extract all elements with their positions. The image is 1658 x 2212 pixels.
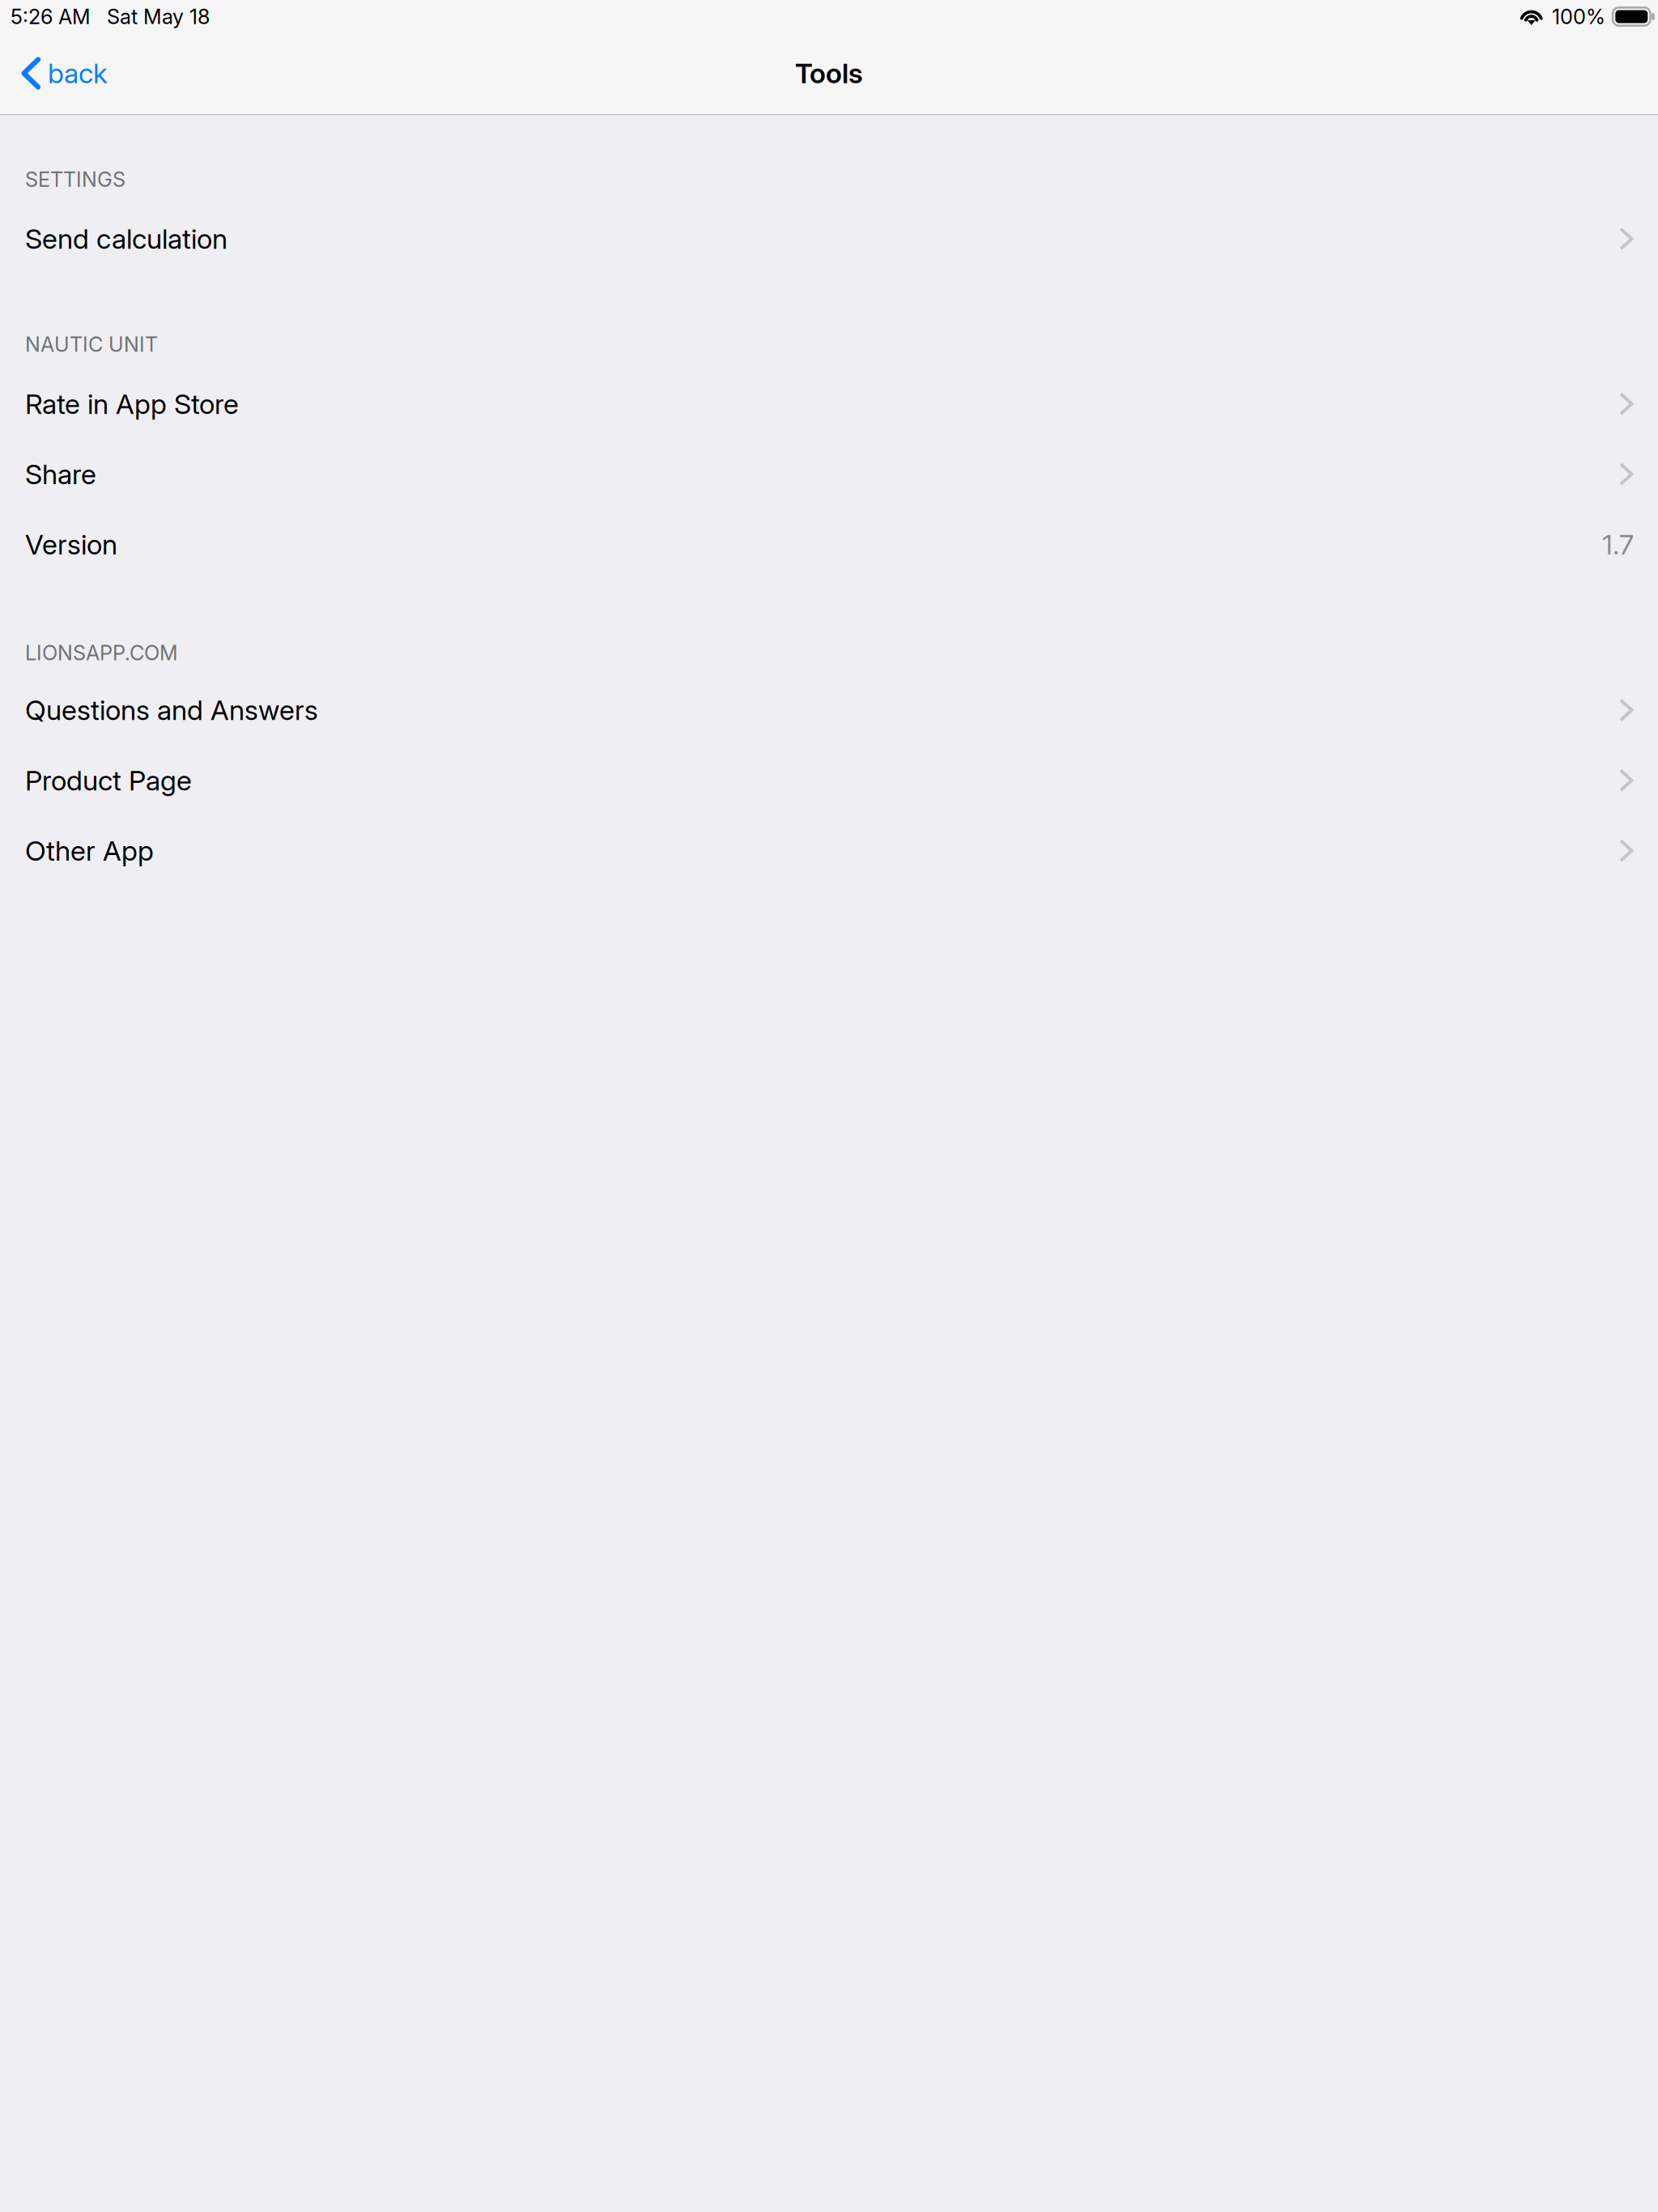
button[interactable]: back: [0, 33, 124, 113]
staticText: Product Page: [25, 764, 192, 797]
staticText: Rate in App Store: [25, 387, 239, 420]
staticText: LIONSAPP.COM: [25, 641, 178, 665]
button[interactable]: Rate in App Store: [0, 369, 1658, 439]
staticText: 1.7: [1602, 528, 1634, 561]
button[interactable]: Questions and Answers: [0, 675, 1658, 745]
staticText: back: [48, 57, 108, 90]
staticText: Send calculation: [25, 222, 227, 255]
staticText: SETTINGS: [25, 167, 125, 192]
staticText: 5:26 AM: [11, 4, 91, 29]
staticText: NAUTIC UNIT: [25, 332, 158, 357]
button[interactable]: Send calculation: [0, 204, 1658, 274]
staticText: Version: [25, 528, 117, 561]
staticText: Tools: [795, 57, 863, 90]
staticText: 100%: [1552, 4, 1605, 29]
button[interactable]: Version: [0, 509, 1658, 580]
button[interactable]: Share: [0, 439, 1658, 509]
staticText: Questions and Answers: [25, 693, 318, 727]
button[interactable]: Other App: [0, 815, 1658, 886]
button[interactable]: Product Page: [0, 745, 1658, 815]
staticText: Other App: [25, 834, 154, 867]
staticText: Sat May 18: [107, 4, 210, 29]
staticText: Share: [25, 457, 96, 491]
